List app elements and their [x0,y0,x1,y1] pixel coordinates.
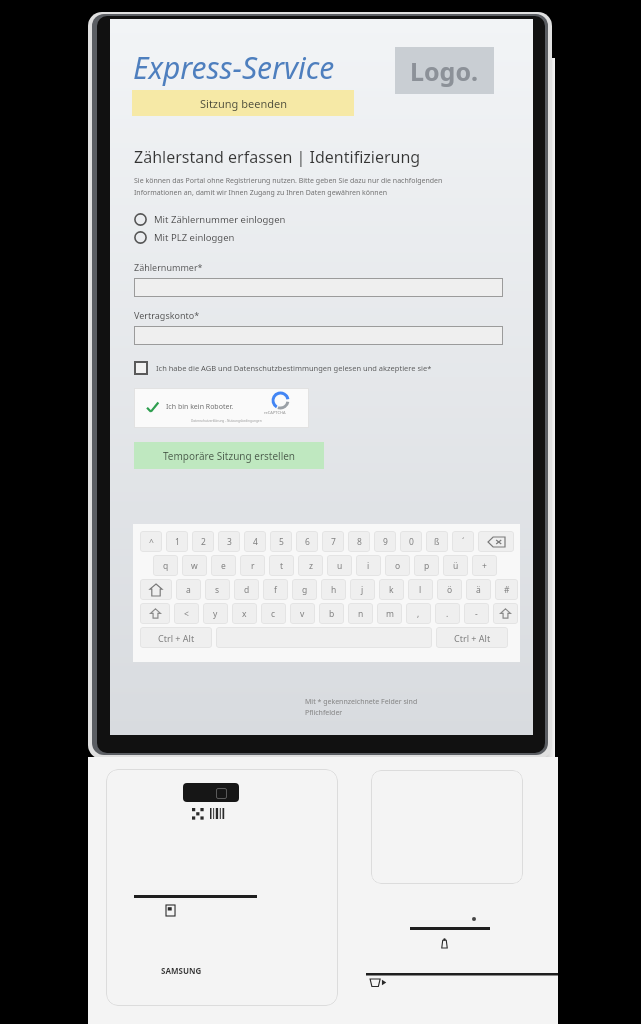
staticText: Mit Zählernummer einloggen [154,213,286,226]
button[interactable]: q [153,555,178,576]
button[interactable]: 4 [244,531,266,552]
staticText: Express-Service [133,47,335,88]
button[interactable]: Mit Zählernummer einloggen [134,210,503,228]
button[interactable]: ö [437,579,462,600]
button[interactable]: ß [426,531,448,552]
button[interactable]: s [205,579,230,600]
button[interactable]: p [414,555,439,576]
button[interactable] [493,603,518,624]
button[interactable]: 1 [166,531,188,552]
button[interactable]: Ctrl + Alt [436,627,508,648]
button[interactable]: j [350,579,375,600]
button[interactable]: z [298,555,323,576]
button[interactable]: 7 [322,531,344,552]
staticText: h [331,584,337,596]
button[interactable]: r [240,555,265,576]
staticText: 4 [253,536,258,548]
button[interactable]: Barcode scanner [183,783,239,802]
button[interactable]: 9 [374,531,396,552]
button[interactable]: Ich habe die AGB und Datenschutzbestimmu… [134,361,503,375]
staticText: Ich habe die AGB und Datenschutzbestimmu… [156,363,432,373]
button[interactable]: Sitzung beenden [132,90,354,116]
button[interactable]: < [174,603,199,624]
staticText: 7 [331,536,336,548]
button[interactable]: n [348,603,373,624]
button[interactable]: d [234,579,259,600]
staticText: 0 [409,536,414,548]
button[interactable]: ´ [452,531,474,552]
button[interactable]: w [182,555,207,576]
button[interactable]: Ctrl + Alt [140,627,212,648]
button[interactable]: ä [466,579,491,600]
staticText: Sitzung beenden [200,96,287,111]
button[interactable]: o [385,555,410,576]
button[interactable]: - [464,603,489,624]
staticText: d [244,584,250,596]
button[interactable]: ^ [140,531,162,552]
button[interactable] [134,278,503,297]
button[interactable]: y [203,603,228,624]
staticText: # [504,584,510,596]
button[interactable]: m [377,603,402,624]
button[interactable]: e [211,555,236,576]
button[interactable]: g [292,579,317,600]
button[interactable] [140,603,170,624]
button[interactable]: # [495,579,518,600]
staticText: ^ [149,536,154,548]
button[interactable]: l [408,579,433,600]
staticText: i [367,560,370,572]
staticText: n [358,608,364,620]
button[interactable]: t [269,555,294,576]
button[interactable]: Card reader [371,770,523,884]
button[interactable]: Mit PLZ einloggen [134,228,503,246]
button[interactable]: x [232,603,257,624]
button[interactable]: u [327,555,352,576]
button[interactable]: 2 [192,531,214,552]
staticText: Zählerstand erfassen | Identifizierung [134,146,421,168]
staticText: j [361,584,364,596]
button[interactable]: . [435,603,460,624]
button[interactable]: v [290,603,315,624]
staticText: ü [453,560,459,572]
staticText: v [300,608,305,620]
button[interactable]: Logo [395,47,494,94]
staticText: z [309,560,313,572]
staticText: ö [447,584,453,596]
staticText: Logo. [410,54,479,88]
button[interactable]: + [472,555,497,576]
button[interactable] [478,531,514,552]
staticText: - [475,608,478,620]
button[interactable]: 6 [296,531,318,552]
button[interactable]: , [406,603,431,624]
button[interactable]: reCAPTCHA Ich bin kein Roboter [134,388,309,428]
staticText: 3 [227,536,232,548]
staticText: Mit PLZ einloggen [154,231,235,244]
button[interactable]: Temporäre Sitzung erstellen [134,442,324,469]
button[interactable]: 8 [348,531,370,552]
staticText: . [446,608,449,620]
button[interactable]: 5 [270,531,292,552]
button[interactable]: b [319,603,344,624]
button[interactable] [216,627,432,648]
staticText: p [424,560,430,572]
button[interactable] [134,326,503,345]
staticText: SAMSUNG [161,965,202,976]
staticText: reCAPTCHA [264,410,286,415]
staticText: e [221,560,226,572]
staticText: + [482,560,487,572]
staticText: Zählernummer* [134,261,203,273]
button[interactable]: 3 [218,531,240,552]
button[interactable]: 0 [400,531,422,552]
button[interactable]: a [176,579,201,600]
button[interactable] [140,579,172,600]
button[interactable]: i [356,555,381,576]
staticText: y [213,608,218,620]
staticText: ß [434,536,440,548]
button[interactable]: ü [443,555,468,576]
button[interactable]: c [261,603,286,624]
staticText: q [163,560,169,572]
button[interactable]: f [263,579,288,600]
staticText: Ctrl + Alt [454,632,491,644]
button[interactable]: h [321,579,346,600]
button[interactable]: k [379,579,404,600]
